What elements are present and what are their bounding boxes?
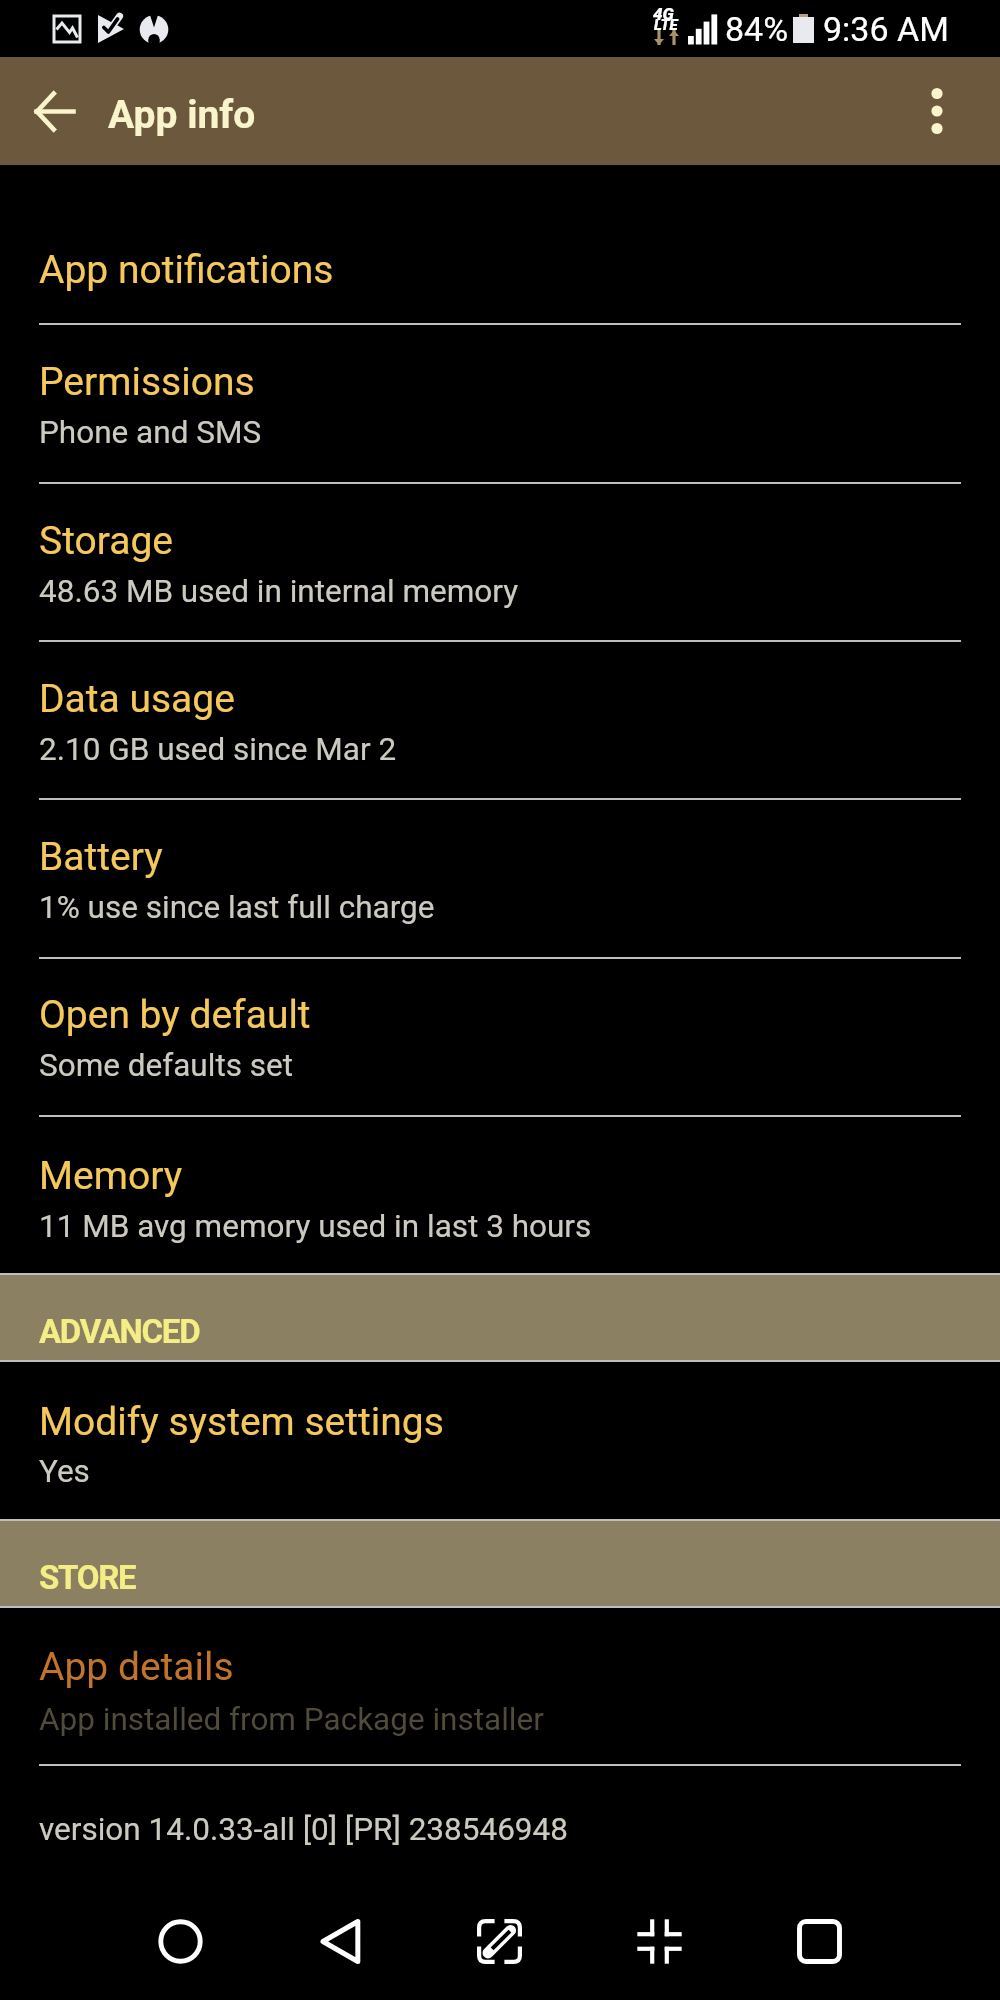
staticText: 9:36 AM [823,9,949,49]
button[interactable] [0,1116,1000,1274]
button[interactable]: Capture plus [445,1883,553,2000]
button[interactable]: Home [126,1883,234,2000]
staticText: Data usage [39,676,235,722]
button[interactable]: STORE [0,1519,1000,1608]
staticText: 2.10 GB used since Mar 2 [39,731,397,768]
staticText: LTE [654,16,678,34]
staticText: Memory [39,1153,183,1199]
staticText: 48.63 MB used in internal memory [39,573,519,610]
staticText: 4G [653,4,674,24]
staticText: Some defaults set [39,1047,294,1084]
button[interactable]: Back [286,1883,394,2000]
staticText: Open by default [39,992,311,1038]
staticText: ADVANCED [39,1312,200,1351]
button[interactable] [0,1608,1000,1764]
staticText: Permissions [39,359,255,405]
button[interactable] [0,1361,1000,1519]
staticText: Modify system settings [39,1399,444,1445]
staticText: Yes [39,1453,90,1490]
button[interactable]: Recents [765,1883,873,2000]
button[interactable] [0,957,1000,1115]
staticText: Phone and SMS [39,414,262,451]
staticText: STORE [39,1558,136,1597]
button[interactable] [0,166,1000,324]
button[interactable] [0,640,1000,798]
staticText: version 14.0.33-all [0] [PR] 238546948 [39,1811,568,1848]
staticText: 84% [725,9,789,49]
staticText: Battery [39,834,163,880]
staticText: App notifications [39,247,334,293]
button[interactable] [0,482,1000,640]
button[interactable]: Back [12,69,96,153]
staticText: App details [39,1644,234,1690]
staticText: 1% use since last full charge [39,889,435,926]
staticText: Storage [39,518,174,564]
staticText: 11 MB avg memory used in last 3 hours [39,1208,592,1245]
button[interactable]: ADVANCED [0,1273,1000,1362]
button[interactable]: More options [898,72,976,150]
button[interactable] [0,799,1000,957]
staticText: App info [108,92,256,138]
staticText: App installed from Package installer [39,1701,544,1738]
button[interactable] [0,324,1000,482]
button[interactable]: Minimize [605,1883,713,2000]
